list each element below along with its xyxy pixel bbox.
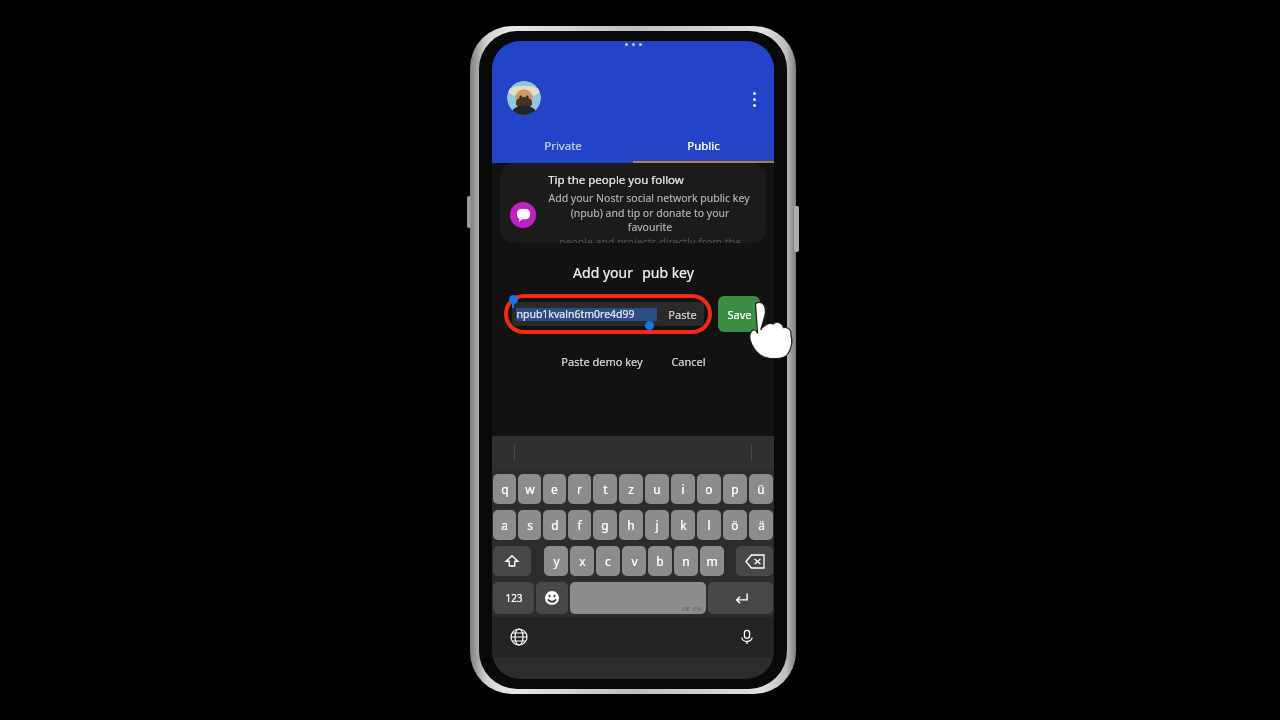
button[interactable]: l bbox=[697, 510, 721, 540]
staticText: c bbox=[605, 553, 611, 569]
button[interactable]: f bbox=[568, 510, 591, 540]
staticText: u bbox=[653, 481, 661, 497]
button[interactable]: Shift bbox=[493, 546, 531, 576]
staticText: b bbox=[656, 553, 664, 569]
staticText: npub1kvaln6tm0re4d99 bbox=[516, 307, 635, 321]
staticText: e bbox=[551, 481, 558, 497]
button[interactable]: q bbox=[493, 474, 516, 504]
button[interactable]: h bbox=[619, 510, 643, 540]
staticText: Paste demo key bbox=[561, 354, 643, 369]
staticText: a bbox=[501, 517, 508, 533]
staticText: DE bbox=[682, 605, 690, 613]
button[interactable]: Space bbox=[570, 582, 706, 614]
button[interactable]: o bbox=[697, 474, 721, 504]
button[interactable]: b bbox=[648, 546, 672, 576]
button[interactable]: Backspace bbox=[736, 546, 773, 576]
staticText: q bbox=[501, 481, 509, 497]
button[interactable]: Paste demo key bbox=[553, 350, 651, 373]
staticText: h bbox=[627, 517, 635, 533]
button[interactable]: i bbox=[671, 474, 695, 504]
staticText: y bbox=[553, 553, 560, 569]
button[interactable]: Public bbox=[633, 129, 774, 163]
staticText: Add your bbox=[573, 263, 633, 282]
button[interactable]: v bbox=[622, 546, 646, 576]
staticText: l bbox=[707, 517, 711, 533]
button[interactable]: y bbox=[544, 546, 568, 576]
staticText: people and projects directly from the mi… bbox=[548, 235, 752, 243]
staticText: (npub) and tip or donate to your favouri… bbox=[548, 206, 752, 234]
staticText: j bbox=[655, 517, 659, 533]
button[interactable]: z bbox=[619, 474, 643, 504]
button[interactable]: 123 bbox=[493, 582, 534, 614]
button[interactable]: npub1kvaln6tm0re4d99 bbox=[512, 302, 704, 326]
staticText: z bbox=[628, 481, 634, 497]
staticText: 123 bbox=[505, 591, 523, 605]
staticText: r bbox=[577, 481, 582, 497]
staticText: pub key bbox=[642, 263, 694, 282]
button[interactable]: u bbox=[645, 474, 669, 504]
button[interactable]: Save bbox=[718, 296, 760, 332]
staticText: v bbox=[631, 553, 638, 569]
staticText: Cancel bbox=[671, 354, 706, 369]
button[interactable]: Private bbox=[492, 129, 633, 163]
staticText: i bbox=[681, 481, 685, 497]
staticText: ö bbox=[731, 517, 739, 533]
staticText: EN bbox=[693, 605, 701, 613]
staticText: Save bbox=[727, 307, 752, 322]
button[interactable]: t bbox=[593, 474, 617, 504]
button[interactable]: ö bbox=[723, 510, 747, 540]
button[interactable]: m bbox=[700, 546, 724, 576]
button[interactable]: x bbox=[570, 546, 594, 576]
button[interactable]: Paste bbox=[668, 307, 697, 322]
button[interactable]: d bbox=[543, 510, 566, 540]
staticText: ü bbox=[757, 481, 765, 497]
staticText: m bbox=[706, 553, 718, 569]
staticText: t bbox=[603, 481, 608, 497]
button[interactable]: e bbox=[543, 474, 566, 504]
button[interactable]: j bbox=[645, 510, 669, 540]
staticText: w bbox=[525, 481, 535, 497]
button[interactable]: a bbox=[493, 510, 516, 540]
button[interactable]: w bbox=[518, 474, 541, 504]
button[interactable]: Enter bbox=[708, 582, 773, 614]
button[interactable]: Emoji bbox=[536, 582, 568, 614]
staticText: x bbox=[579, 553, 586, 569]
staticText: g bbox=[601, 517, 609, 533]
staticText: o bbox=[705, 481, 713, 497]
staticText: Tip the people you follow bbox=[548, 172, 684, 188]
button[interactable]: Change language bbox=[508, 626, 530, 648]
button[interactable]: Voice input bbox=[736, 626, 758, 648]
button[interactable]: r bbox=[568, 474, 591, 504]
button[interactable]: ä bbox=[749, 510, 773, 540]
button[interactable]: k bbox=[671, 510, 695, 540]
staticText: Private bbox=[544, 138, 582, 154]
staticText: ä bbox=[758, 517, 765, 533]
button[interactable]: c bbox=[596, 546, 620, 576]
button[interactable]: More options bbox=[740, 85, 768, 113]
button[interactable]: n bbox=[674, 546, 698, 576]
staticText: Add your Nostr social network public key bbox=[548, 191, 750, 205]
button[interactable]: Tip the people you follow bbox=[500, 163, 766, 243]
staticText: f bbox=[577, 517, 582, 533]
staticText: k bbox=[680, 517, 687, 533]
button[interactable]: Profile bbox=[507, 81, 541, 115]
button[interactable]: p bbox=[723, 474, 747, 504]
staticText: p bbox=[731, 481, 739, 497]
button[interactable]: ü bbox=[749, 474, 773, 504]
button[interactable]: g bbox=[593, 510, 617, 540]
staticText: Public bbox=[687, 138, 720, 154]
staticText: n bbox=[682, 553, 690, 569]
staticText: Paste bbox=[668, 307, 697, 322]
staticText: s bbox=[527, 517, 533, 533]
staticText: d bbox=[551, 517, 559, 533]
button[interactable]: s bbox=[518, 510, 541, 540]
button[interactable]: Cancel bbox=[663, 350, 714, 373]
